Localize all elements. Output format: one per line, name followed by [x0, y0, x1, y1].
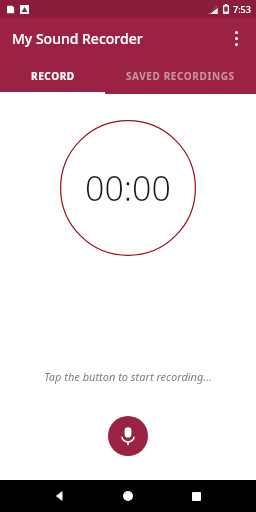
- staticText: 00:00: [85, 165, 171, 211]
- staticText: Tap the button to start recording...: [0, 369, 256, 384]
- button[interactable]: Back: [44, 480, 76, 512]
- button[interactable]: Home: [112, 480, 144, 512]
- button[interactable]: Recent apps: [180, 480, 212, 512]
- staticText: SAVED RECORDINGS: [126, 69, 235, 83]
- button[interactable]: SAVED RECORDINGS: [105, 58, 256, 94]
- button[interactable]: More options: [220, 22, 252, 54]
- button[interactable]: RECORD: [0, 58, 105, 94]
- staticText: My Sound Recorder: [12, 29, 143, 48]
- staticText: 7:53: [233, 3, 251, 15]
- button[interactable]: Start recording: [108, 416, 148, 456]
- staticText: RECORD: [31, 69, 75, 83]
